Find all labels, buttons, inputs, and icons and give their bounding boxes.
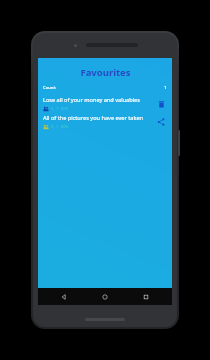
staticText: 1 (56, 124, 59, 129)
staticText: 9 (51, 124, 54, 129)
staticText: 1 (56, 106, 59, 111)
button[interactable]: Back (49, 288, 79, 305)
staticText: Count: (43, 85, 57, 91)
button[interactable]: Recents (131, 288, 161, 305)
button[interactable]: Delete (154, 97, 168, 111)
staticText: 60% (61, 124, 69, 129)
staticText: 1 (164, 85, 167, 91)
staticText: Lose all of your money and valuables (43, 96, 140, 104)
staticText: 60% (61, 106, 69, 111)
staticText: All of the pictures you have ever taken (43, 114, 144, 122)
button[interactable]: Lose all of your money and valuables (43, 96, 150, 112)
button[interactable]: All of the pictures you have ever taken (43, 114, 150, 130)
button[interactable]: Home (90, 288, 120, 305)
staticText: 9 (51, 106, 54, 111)
button[interactable]: Share (154, 115, 168, 129)
staticText: Favourites (80, 66, 131, 79)
